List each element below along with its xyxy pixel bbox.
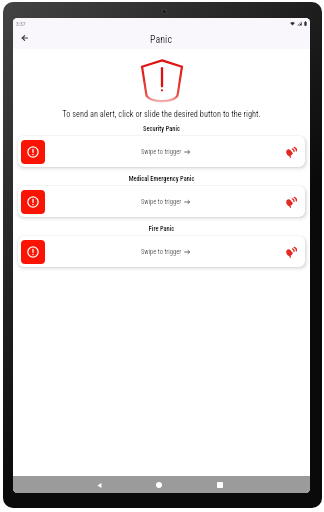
staticText: Swipe to trigger xyxy=(141,148,182,156)
button[interactable]: Swipe to trigger xyxy=(18,236,305,267)
button[interactable]: Home xyxy=(151,477,167,493)
button[interactable]: Back xyxy=(91,477,107,493)
staticText: Swipe to trigger xyxy=(141,248,182,256)
button[interactable]: Back xyxy=(17,30,33,46)
staticText: To send an alert, click or slide the des… xyxy=(13,109,310,119)
staticText: Medical Emergency Panic xyxy=(13,175,310,183)
staticText: Panic xyxy=(150,34,173,46)
button[interactable]: Recents xyxy=(212,477,228,493)
button[interactable]: Swipe to trigger xyxy=(18,136,305,167)
staticText: Security Panic xyxy=(13,125,310,133)
button[interactable]: Swipe to trigger xyxy=(18,186,305,217)
staticText: Fire Panic xyxy=(13,225,310,233)
staticText: 3:37 xyxy=(16,21,26,27)
staticText: Swipe to trigger xyxy=(141,198,182,206)
